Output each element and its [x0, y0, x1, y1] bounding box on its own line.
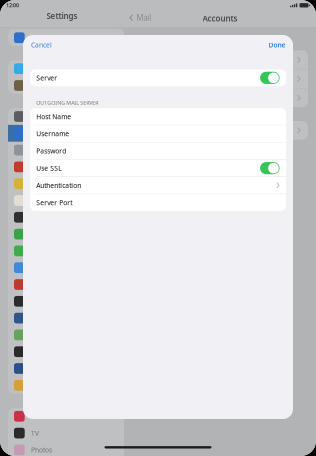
button[interactable]: Mail — [8, 125, 124, 142]
staticText: Done — [268, 41, 285, 49]
staticText: 12:00 — [6, 2, 19, 9]
staticText: Music — [31, 412, 49, 421]
button[interactable]: Fetch New Data — [132, 121, 308, 140]
staticText: Password — [36, 146, 66, 155]
button[interactable]: Safari — [8, 276, 124, 293]
staticText: Server Port — [36, 198, 72, 207]
button[interactable]: Server Port — [30, 194, 286, 211]
staticText: Username — [36, 129, 69, 138]
staticText: Contacts — [31, 33, 57, 42]
button[interactable]: Stocks — [8, 310, 124, 326]
button[interactable]: Maps — [8, 343, 124, 360]
button[interactable]: Passwords — [8, 108, 124, 125]
button[interactable]: Toggle — [260, 72, 280, 84]
staticText: Notes — [31, 179, 49, 188]
button[interactable]: Home — [8, 377, 124, 394]
staticText: Mail — [31, 129, 45, 138]
button[interactable]: Password — [30, 143, 286, 160]
button[interactable]: Use SSL — [30, 160, 286, 177]
button[interactable]: Host Name — [30, 108, 286, 125]
staticText: Photos — [31, 445, 52, 454]
staticText: Accounts — [202, 13, 237, 24]
button[interactable]: TV — [8, 425, 124, 441]
button[interactable]: Photos — [8, 441, 124, 456]
button[interactable]: Music — [8, 408, 124, 425]
staticText: Authentication — [36, 181, 81, 190]
button[interactable]: Phone — [8, 226, 124, 242]
staticText: Calendar — [31, 162, 60, 171]
button[interactable]: Username — [30, 125, 286, 143]
button[interactable]: Reminders — [8, 192, 124, 209]
staticText: OUTGOING MAIL SERVER — [36, 99, 98, 106]
staticText: TV — [31, 429, 39, 438]
button[interactable]: Iacopo — [132, 69, 308, 88]
staticText: App Store — [31, 64, 62, 73]
button[interactable]: Contacts — [8, 142, 124, 158]
button[interactable]: Contacts — [8, 29, 124, 46]
button[interactable]: Server — [30, 69, 286, 86]
staticText: Use SSL — [36, 164, 61, 173]
button[interactable]: Toggle — [260, 162, 280, 174]
staticText: Wallet — [31, 81, 51, 90]
staticText: Mail — [136, 12, 151, 23]
button[interactable]: News — [8, 293, 124, 310]
button[interactable]: Messages — [8, 242, 124, 259]
staticText: Cancel — [31, 41, 52, 49]
staticText: Server — [36, 73, 57, 82]
staticText: Passwords — [31, 112, 64, 121]
button[interactable]: Notes — [8, 175, 124, 192]
button[interactable]: Authentication — [30, 177, 286, 194]
staticText: Settings — [46, 11, 77, 21]
button[interactable]: FaceTime — [8, 259, 124, 276]
button[interactable]: iCloud — [132, 50, 308, 69]
button[interactable]: Add Account — [132, 88, 308, 107]
button[interactable]: Freeform — [8, 209, 124, 226]
button[interactable]: Translate — [8, 326, 124, 343]
staticText: Contacts — [31, 146, 57, 155]
button[interactable]: Shortcuts — [8, 360, 124, 377]
staticText: Reminders — [31, 196, 65, 205]
button[interactable]: Cancel — [23, 35, 60, 55]
button[interactable]: Wallet — [8, 77, 124, 94]
staticText: Host Name — [36, 112, 71, 121]
button[interactable]: Done — [261, 35, 293, 55]
button[interactable]: Calendar — [8, 158, 124, 175]
button[interactable]: App Store — [8, 60, 124, 77]
